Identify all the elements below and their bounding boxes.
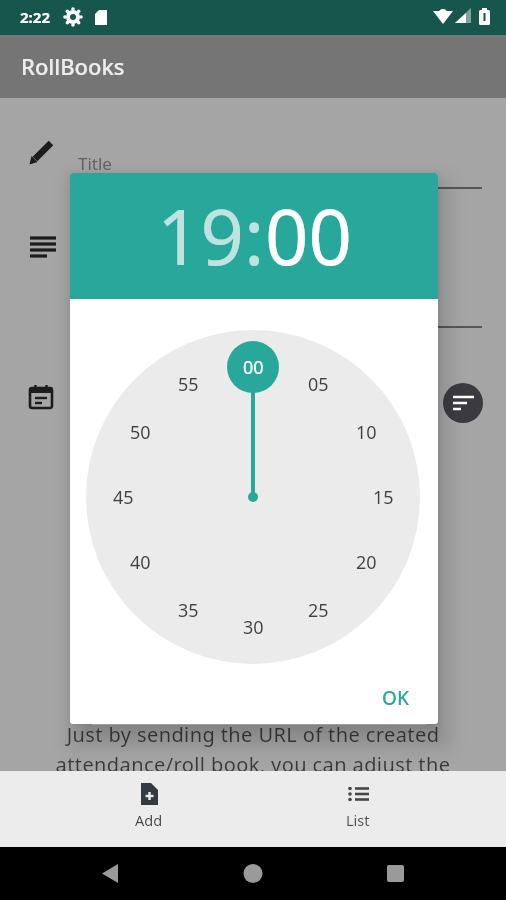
button[interactable]: Add [109, 771, 189, 847]
button[interactable]: 55 [162, 358, 214, 410]
staticText: : [244, 184, 265, 288]
staticText: 00 [265, 184, 352, 288]
button[interactable]: 35 [162, 584, 214, 636]
staticText: Add [135, 810, 163, 830]
staticText: 35 [178, 598, 199, 623]
staticText: 45 [113, 485, 134, 510]
button[interactable]: 25 [292, 584, 344, 636]
staticText: 05 [308, 372, 329, 397]
button[interactable]: List [318, 771, 398, 847]
button[interactable]: 20 [340, 536, 392, 588]
button[interactable]: 15 [357, 471, 409, 523]
staticText: Just by sending the URL of the created [0, 721, 506, 748]
staticText: 30 [243, 615, 264, 640]
button[interactable]: 45 [97, 471, 149, 523]
staticText: 55 [178, 372, 199, 397]
staticText: 15 [373, 485, 394, 510]
staticText: 2:22 [20, 7, 50, 27]
staticText: attendance/roll book, you can adjust the [0, 751, 506, 778]
button[interactable]: 30 [227, 601, 279, 653]
button[interactable]: 00 [227, 341, 279, 393]
button[interactable]: 40 [114, 536, 166, 588]
staticText: 25 [308, 598, 329, 623]
staticText: OK [382, 685, 409, 711]
button[interactable]: 50 [114, 406, 166, 458]
staticText: 20 [356, 550, 377, 575]
staticText: 40 [130, 550, 151, 575]
button[interactable] [443, 383, 483, 423]
staticText: 50 [130, 420, 151, 445]
staticText: RollBooks [21, 51, 125, 81]
staticText: 19 [157, 184, 244, 288]
staticText: 00 [243, 355, 264, 380]
button[interactable]: 10 [340, 406, 392, 458]
staticText: List [346, 810, 370, 830]
button[interactable]: 05 [292, 358, 344, 410]
button[interactable]: OK [370, 678, 420, 718]
staticText: Title [78, 152, 112, 175]
staticText: 10 [356, 420, 377, 445]
